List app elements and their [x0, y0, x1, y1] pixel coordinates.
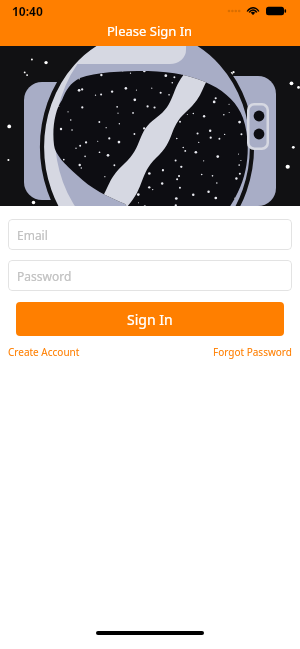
other: Status [228, 4, 288, 18]
staticText: Forgot Password [213, 345, 292, 359]
staticText: 10:40 [12, 3, 43, 19]
button[interactable]: Forgot Password [211, 343, 294, 361]
button[interactable]: Create Account [6, 343, 82, 361]
button[interactable]: Sign In [16, 302, 284, 336]
button[interactable]: Password [8, 260, 292, 291]
staticText: Password [17, 268, 72, 284]
staticText: Sign In [127, 310, 173, 329]
staticText: Email [17, 227, 48, 243]
staticText: Create Account [8, 345, 80, 359]
button[interactable]: Email [8, 219, 292, 250]
staticText: Please Sign In [107, 22, 193, 40]
